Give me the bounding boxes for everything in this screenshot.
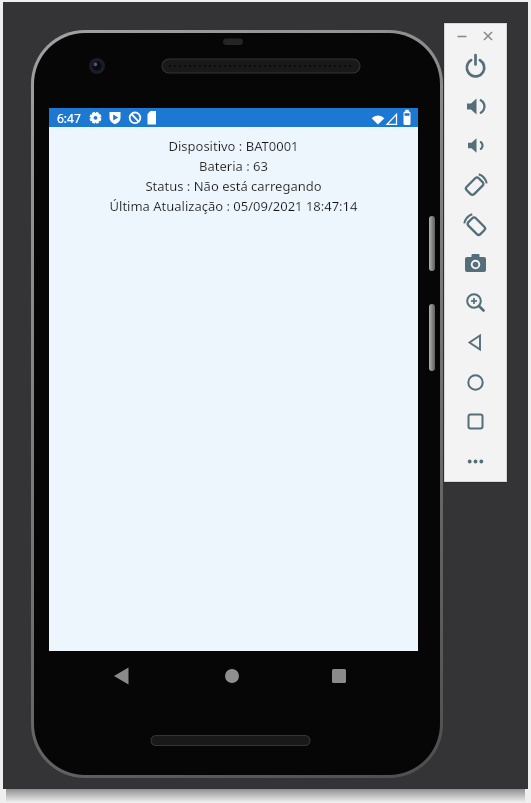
button[interactable] xyxy=(460,91,491,122)
staticText: Status : Não está carregando xyxy=(49,177,418,195)
staticText: Dispositivo : BAT0001 xyxy=(49,137,418,155)
staticText: Bateria : 63 xyxy=(49,157,418,175)
button[interactable] xyxy=(460,288,491,319)
button[interactable] xyxy=(106,660,138,692)
staticText: Última Atualização : 05/09/2021 18:47:14 xyxy=(49,197,418,215)
staticText: 6:47 xyxy=(57,110,81,126)
button[interactable] xyxy=(460,169,491,200)
button[interactable] xyxy=(456,30,468,42)
button[interactable] xyxy=(460,248,491,279)
button[interactable] xyxy=(460,446,491,477)
button[interactable] xyxy=(460,209,491,240)
button[interactable] xyxy=(460,327,491,358)
button[interactable] xyxy=(216,660,248,692)
button[interactable] xyxy=(460,367,491,398)
button[interactable] xyxy=(482,30,494,42)
button[interactable] xyxy=(460,130,491,161)
button[interactable] xyxy=(460,406,491,437)
button[interactable] xyxy=(460,51,491,82)
button[interactable] xyxy=(323,660,355,692)
